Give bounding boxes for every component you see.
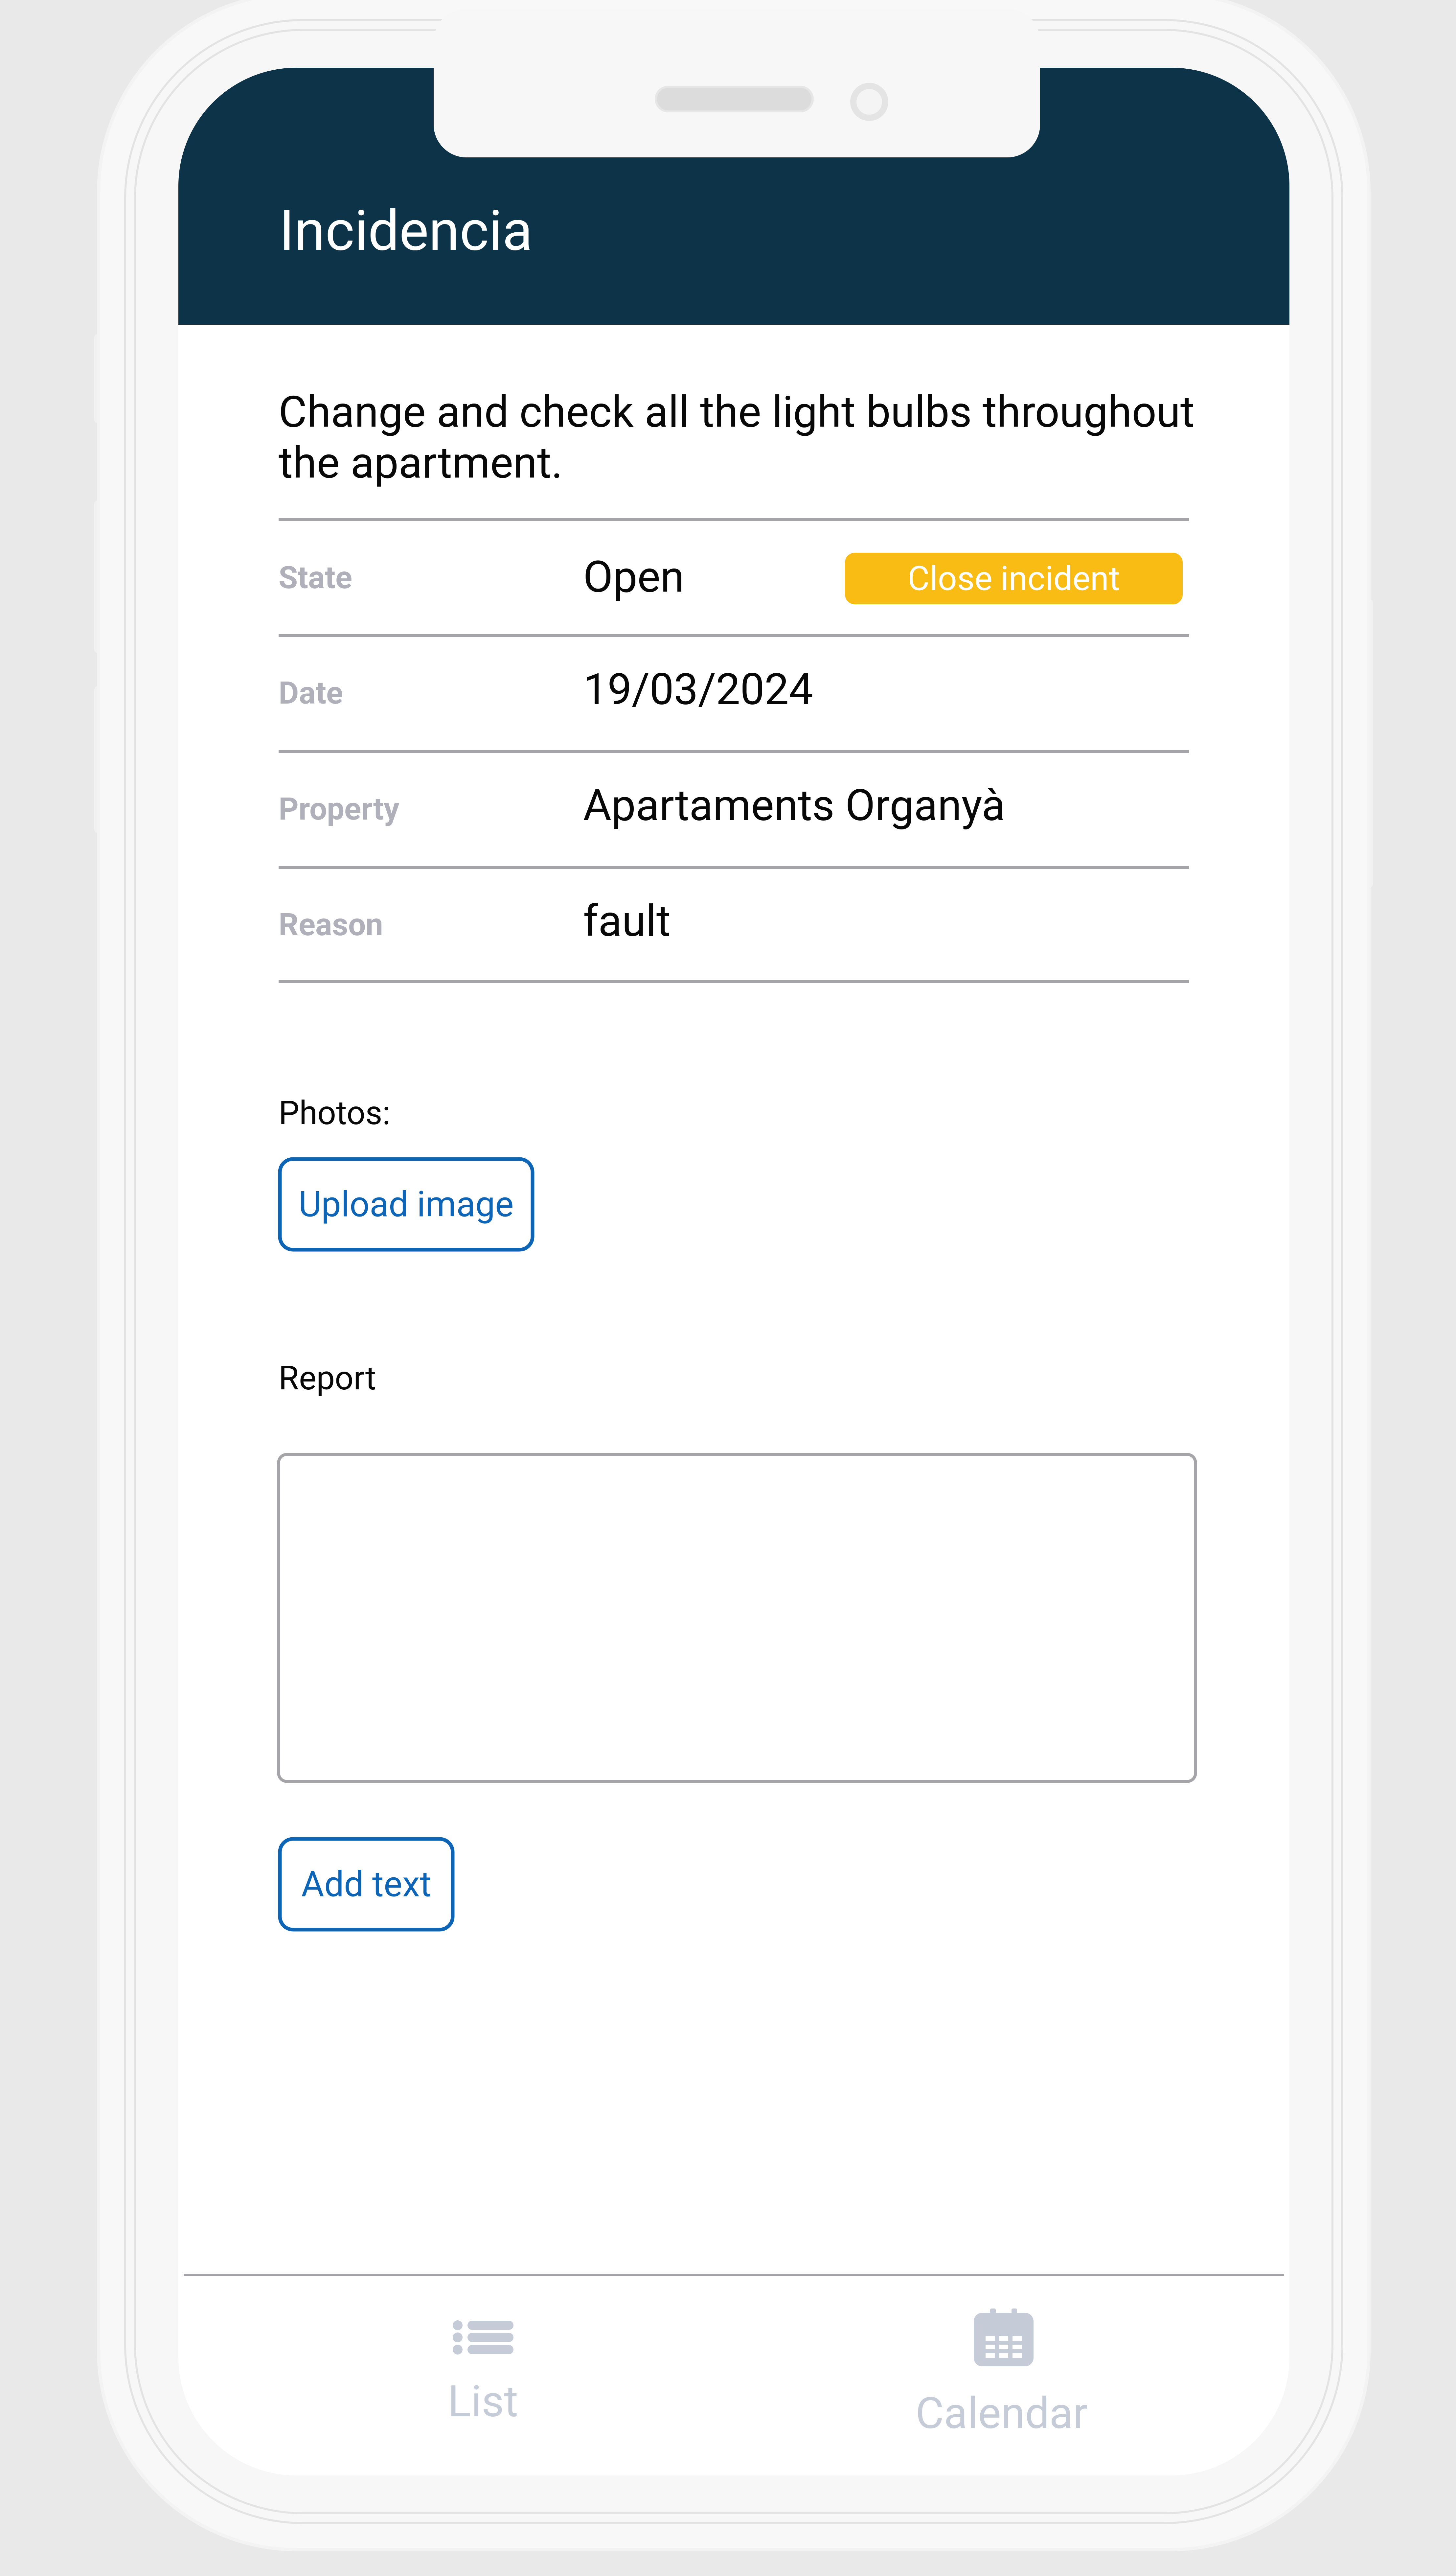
staticText: Date [279, 675, 343, 711]
staticText: Reason [279, 906, 383, 943]
button[interactable]: Calendar [734, 2276, 1289, 2473]
button[interactable]: List [178, 2276, 734, 2473]
staticText: 19/03/2024 [583, 664, 813, 715]
staticText: Incidencia [279, 198, 533, 263]
staticText: Change and check all the light bulbs thr… [279, 387, 1194, 488]
staticText: Property [279, 791, 399, 827]
staticText: Apartaments Organyà [583, 780, 1005, 831]
staticText: Open [583, 552, 684, 602]
button[interactable]: Upload image [280, 1159, 533, 1250]
staticText: List [448, 2376, 518, 2427]
staticText: fault [583, 896, 671, 947]
button[interactable]: Close incident [845, 553, 1183, 604]
staticText: Calendar [916, 2388, 1088, 2439]
staticText: Photos: [279, 1094, 390, 1132]
button[interactable]: Add text [280, 1839, 453, 1930]
staticText: State [279, 559, 352, 596]
staticText: Add text [301, 1864, 431, 1905]
staticText: Close incident [908, 559, 1120, 598]
staticText: Report [279, 1359, 376, 1397]
staticText: Upload image [299, 1184, 514, 1225]
